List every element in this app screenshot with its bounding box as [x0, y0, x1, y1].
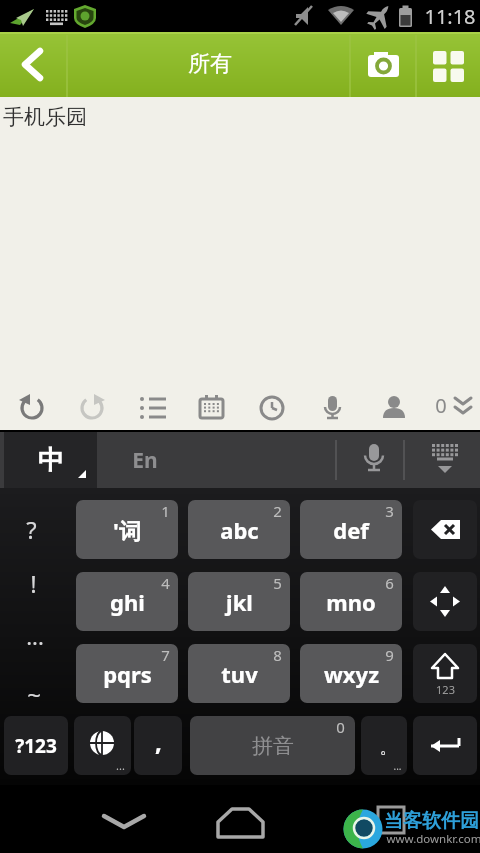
staticText: ... [116, 758, 125, 773]
staticText: ... [393, 759, 402, 773]
staticText: abc [220, 515, 259, 545]
staticText: 11:18 [424, 3, 476, 30]
staticText: 0 [435, 392, 447, 419]
staticText: 1 [161, 501, 170, 521]
staticText: En [132, 446, 158, 475]
button[interactable]: 中 [4, 432, 97, 488]
staticText: 拼音 [252, 733, 294, 759]
button[interactable]: ?123 [4, 716, 68, 775]
staticText: 所有 [188, 50, 232, 78]
staticText: 手机乐园 [3, 104, 87, 130]
staticText: ~ [27, 678, 41, 711]
button[interactable]: ... [74, 716, 131, 775]
button[interactable] [416, 32, 480, 97]
button[interactable] [413, 500, 477, 559]
button[interactable] [180, 795, 300, 845]
staticText: 。 [380, 738, 396, 758]
staticText: 5 [273, 573, 282, 593]
staticText: www.downkr.com [386, 831, 480, 847]
button[interactable]: ghi [76, 572, 178, 631]
button[interactable]: 123 [413, 644, 477, 703]
button[interactable]: , [134, 716, 182, 775]
staticText: jkl [226, 587, 253, 617]
button[interactable]: '词 [76, 500, 178, 559]
staticText: def [333, 515, 369, 545]
button[interactable]: 拼音 [190, 716, 355, 775]
button[interactable]: pqrs [76, 644, 178, 703]
button[interactable]: mno [300, 572, 402, 631]
button[interactable]: En [97, 432, 193, 488]
button[interactable]: abc [188, 500, 290, 559]
button[interactable] [320, 795, 440, 845]
staticText: '词 [113, 515, 141, 545]
staticText: tuv [221, 659, 258, 689]
staticText: 9 [385, 645, 394, 665]
button[interactable] [40, 795, 170, 845]
button[interactable] [413, 716, 477, 775]
staticText: 0 [336, 717, 345, 737]
staticText: ... [26, 621, 44, 651]
staticText: 4 [161, 573, 170, 593]
button[interactable] [404, 432, 480, 488]
button[interactable]: tuv [188, 644, 290, 703]
staticText: ?123 [15, 733, 57, 759]
button[interactable]: wxyz [300, 644, 402, 703]
button[interactable] [0, 32, 67, 97]
staticText: mno [326, 587, 376, 617]
staticText: 7 [161, 645, 170, 665]
staticText: ! [30, 567, 37, 600]
staticText: 3 [385, 501, 394, 521]
staticText: 6 [385, 573, 394, 593]
staticText: 123 [436, 682, 455, 697]
button[interactable]: 。 [361, 716, 407, 775]
staticText: ghi [110, 587, 145, 617]
staticText: 中 [38, 444, 64, 477]
staticText: wxyz [324, 659, 379, 689]
staticText: 当客软件园 [384, 809, 479, 833]
staticText: ? [26, 513, 37, 546]
staticText: 2 [273, 501, 282, 521]
button[interactable]: jkl [188, 572, 290, 631]
button[interactable] [350, 32, 416, 97]
button[interactable] [340, 432, 404, 488]
staticText: , [155, 725, 162, 758]
staticText: pqrs [103, 659, 152, 689]
button[interactable] [413, 572, 477, 631]
staticText: 8 [273, 645, 282, 665]
button[interactable]: def [300, 500, 402, 559]
